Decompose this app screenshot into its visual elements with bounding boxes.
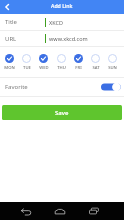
- button[interactable]: SUN: [104, 47, 121, 71]
- button[interactable]: Save: [2, 105, 122, 120]
- button[interactable]: WED: [35, 47, 52, 71]
- button[interactable]: THU: [53, 47, 70, 71]
- staticText: Add Link: [51, 2, 73, 9]
- button[interactable]: Back: [11, 202, 41, 220]
- staticText: FRI: [75, 65, 82, 71]
- button[interactable]: Recents: [79, 202, 109, 220]
- button[interactable]: Back: [0, 0, 14, 14]
- staticText: Save: [55, 109, 69, 117]
- staticText: Title: [5, 18, 45, 26]
- button[interactable]: SAT: [87, 47, 104, 71]
- staticText: WED: [39, 65, 49, 71]
- staticText: www.xkcd.com: [49, 35, 88, 42]
- staticText: SAT: [92, 65, 100, 71]
- button[interactable]: MON: [1, 47, 18, 71]
- staticText: SUN: [108, 65, 117, 71]
- staticText: XKCD: [49, 19, 64, 26]
- button[interactable]: Title: [0, 14, 124, 30]
- staticText: Favorite: [5, 83, 28, 91]
- button[interactable]: URL: [0, 31, 124, 46]
- button[interactable]: Home: [45, 202, 75, 220]
- staticText: MON: [4, 65, 15, 71]
- staticText: THU: [57, 65, 66, 71]
- staticText: TUE: [23, 65, 31, 71]
- button[interactable]: FRI: [70, 47, 87, 71]
- button[interactable]: Favorite: [0, 78, 124, 96]
- staticText: URL: [5, 35, 45, 43]
- button[interactable]: TUE: [18, 47, 35, 71]
